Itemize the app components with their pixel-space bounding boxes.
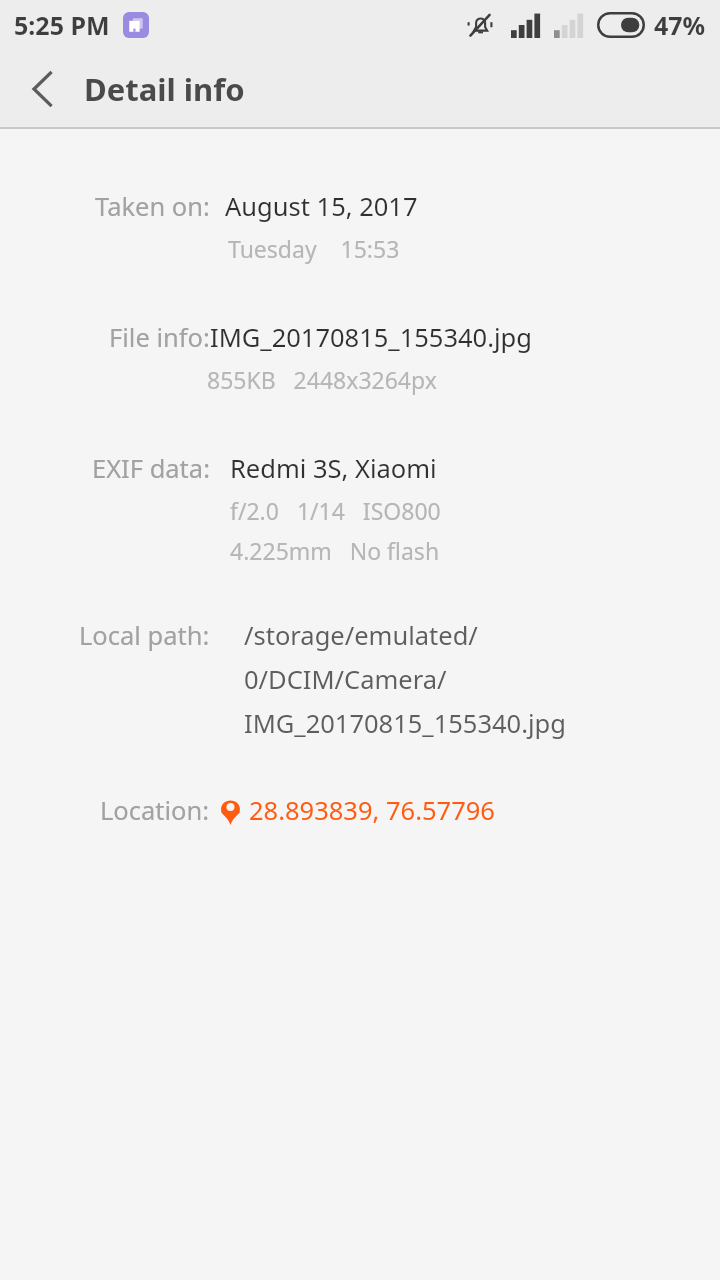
staticText: Local path: bbox=[79, 618, 210, 653]
button[interactable]: File info: bbox=[0, 320, 720, 395]
staticText: EXIF data: bbox=[92, 451, 210, 486]
staticText: 28.893839, 76.57796 bbox=[249, 793, 495, 828]
button[interactable]: Taken on: bbox=[0, 189, 720, 264]
staticText: Location: bbox=[100, 793, 210, 828]
button[interactable]: Local path: bbox=[0, 618, 720, 741]
staticText: IMG_20170815_155340.jpg bbox=[244, 706, 566, 741]
staticText: 5:25 PM bbox=[14, 8, 110, 42]
staticText: 855KB 2448x3264px bbox=[207, 364, 437, 395]
staticText: /storage/emulated/ bbox=[244, 618, 478, 653]
staticText: File info: bbox=[109, 320, 210, 355]
staticText: 0/DCIM/Camera/ bbox=[244, 662, 447, 697]
staticText: IMG_20170815_155340.jpg bbox=[210, 320, 532, 355]
staticText: 4.225mm No flash bbox=[230, 535, 440, 566]
button[interactable]: EXIF data: bbox=[0, 451, 720, 566]
staticText: Taken on: bbox=[95, 189, 210, 224]
staticText: Redmi 3S, Xiaomi bbox=[230, 451, 437, 486]
staticText: Tuesday 15:53 bbox=[228, 233, 400, 264]
staticText: 47% bbox=[654, 8, 706, 42]
staticText: f/2.0 1/14 ISO800 bbox=[230, 495, 441, 526]
staticText: Detail info bbox=[84, 68, 245, 110]
button[interactable]: Back bbox=[12, 59, 72, 119]
staticText: August 15, 2017 bbox=[225, 189, 418, 224]
button[interactable]: Location: bbox=[0, 793, 720, 828]
